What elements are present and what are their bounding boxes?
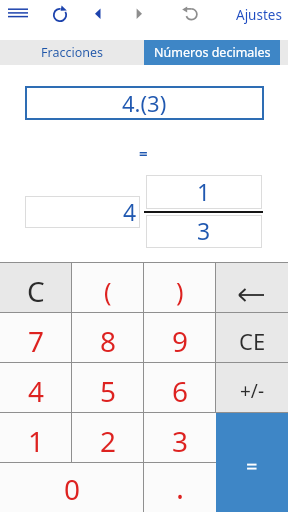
button[interactable]: 4.(3) — [25, 86, 264, 120]
button[interactable]: 8 — [72, 312, 144, 362]
staticText: 0 — [64, 470, 81, 508]
staticText: Números decimales — [154, 44, 271, 61]
button[interactable]: 4 — [0, 362, 72, 412]
button[interactable] — [216, 262, 288, 312]
button[interactable]: +/- — [216, 362, 288, 412]
staticText: CE — [239, 326, 266, 356]
staticText: 9 — [172, 322, 189, 360]
button[interactable] — [47, 2, 74, 28]
staticText: 2 — [100, 422, 117, 460]
staticText: 3 — [197, 215, 211, 246]
staticText: +/- — [240, 378, 265, 404]
button[interactable]: Fracciones — [0, 40, 144, 65]
button[interactable] — [88, 3, 106, 25]
button[interactable]: C — [0, 262, 72, 312]
staticText: ) — [176, 274, 184, 308]
staticText: 4 — [28, 372, 45, 410]
staticText: = — [139, 143, 148, 161]
staticText: 8 — [100, 322, 117, 360]
button[interactable]: 9 — [144, 312, 216, 362]
button[interactable]: = — [216, 412, 288, 512]
staticText: 4 — [123, 196, 137, 227]
staticText: Fracciones — [41, 44, 103, 61]
button[interactable]: ) — [144, 262, 216, 312]
button[interactable]: ( — [72, 262, 144, 312]
button[interactable]: 3 — [144, 412, 216, 462]
button[interactable]: 0 — [0, 462, 144, 512]
staticText: C — [27, 272, 45, 310]
staticText: 4.(3) — [122, 88, 167, 118]
button[interactable] — [178, 2, 202, 26]
staticText: 3 — [172, 422, 189, 460]
staticText: 1 — [197, 176, 211, 207]
button[interactable] — [4, 2, 32, 26]
button[interactable]: Números decimales — [144, 40, 280, 65]
button[interactable]: Ajustes — [230, 4, 288, 26]
staticText: 5 — [100, 372, 117, 410]
staticText: 1 — [28, 422, 45, 460]
staticText: Ajustes — [236, 6, 282, 24]
button[interactable]: 2 — [72, 412, 144, 462]
staticText: . — [176, 467, 185, 508]
button[interactable]: 5 — [72, 362, 144, 412]
button[interactable]: 1 — [0, 412, 72, 462]
button[interactable]: CE — [216, 312, 288, 362]
staticText: 6 — [172, 372, 189, 410]
button[interactable] — [129, 3, 147, 25]
button[interactable]: . — [144, 462, 216, 512]
staticText: ( — [104, 274, 112, 308]
staticText: 7 — [28, 322, 45, 360]
button[interactable]: 6 — [144, 362, 216, 412]
staticText: = — [246, 453, 258, 480]
button[interactable]: 7 — [0, 312, 72, 362]
